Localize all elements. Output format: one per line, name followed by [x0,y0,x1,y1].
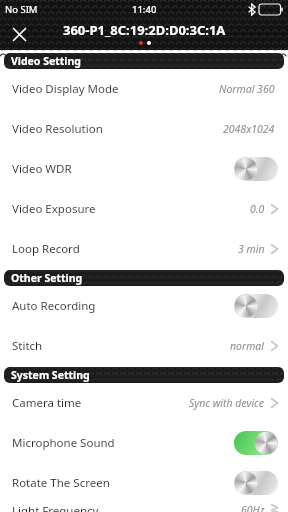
button[interactable]: Microphone Sound [0,423,288,463]
button[interactable]: Camera time [0,383,288,423]
staticText: Loop Record [12,241,80,257]
staticText: Video Resolution [12,121,103,137]
staticText: Video Setting [11,54,81,68]
staticText: 2048x1024 [223,122,275,136]
button[interactable]: Rotate The Screen [0,463,288,503]
button[interactable]: Close [4,19,34,49]
staticText: Rotate The Screen [12,475,110,491]
staticText: No SIM [5,3,38,16]
staticText: normal [230,339,265,353]
staticText: Video Display Mode [12,81,119,97]
button[interactable]: Toggle off [234,157,278,181]
staticText: Stitch [12,338,43,354]
staticText: Video WDR [12,161,72,177]
button[interactable]: Stitch [0,326,288,366]
staticText: 11:40 [132,3,157,16]
button[interactable]: Toggle on [234,431,278,455]
staticText: System Setting [11,368,90,382]
button[interactable]: Video Resolution [0,109,288,149]
staticText: Microphone Sound [12,435,115,451]
staticText: Light Frequency [12,503,99,512]
staticText: Sync with device [189,396,265,410]
staticText: Other Setting [11,271,83,285]
button[interactable]: Video Display Mode [0,69,288,109]
staticText: Auto Recording [12,298,96,314]
button[interactable]: Video WDR [0,149,288,189]
staticText: Video Exposure [12,201,96,217]
staticText: 360-P1_8C:19:2D:D0:3C:1A [63,21,226,39]
button[interactable]: Light Frequency [0,503,288,512]
staticText: 3 min [238,242,265,256]
button[interactable]: Toggle off [234,294,278,318]
button[interactable]: Loop Record [0,229,288,269]
staticText: 0.0 [250,202,265,216]
button[interactable]: Video Exposure [0,189,288,229]
staticText: Normal 360 [219,82,275,96]
button[interactable]: Toggle off [234,471,278,495]
staticText: 60Hz [241,503,265,512]
staticText: Camera time [12,395,82,411]
button[interactable]: Auto Recording [0,286,288,326]
